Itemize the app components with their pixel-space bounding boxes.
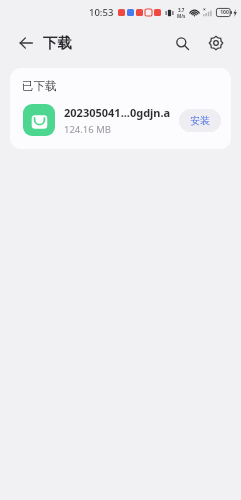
- staticText: 202305041...0gdjn.apk: [64, 105, 173, 120]
- button[interactable]: 安装: [179, 109, 221, 132]
- staticText: 安装: [190, 114, 210, 127]
- staticText: M/s: [177, 13, 186, 19]
- button[interactable]: 202305041...0gdjn.apk: [10, 103, 231, 149]
- staticText: 10:53: [89, 6, 114, 19]
- staticText: 已下载: [22, 79, 57, 93]
- staticText: 124.16 MB: [64, 123, 111, 136]
- staticText: 下载: [43, 34, 72, 52]
- staticText: 3.7: [178, 7, 185, 13]
- button[interactable]: Back: [11, 28, 41, 58]
- staticText: 100: [220, 9, 229, 16]
- button[interactable]: Search: [167, 28, 197, 58]
- button[interactable]: Settings: [201, 28, 231, 58]
